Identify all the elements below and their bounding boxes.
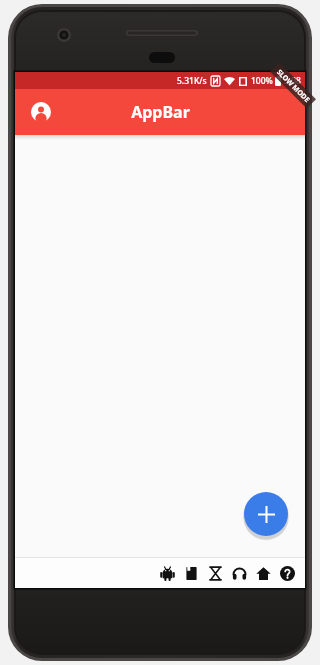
button[interactable]: Timer bbox=[203, 559, 227, 587]
button[interactable]: Book bbox=[179, 559, 203, 587]
staticText: SLOW MODE bbox=[274, 67, 312, 105]
staticText: 5.31K/s bbox=[177, 75, 207, 87]
staticText: AppBar bbox=[131, 101, 190, 123]
button[interactable]: Add bbox=[244, 492, 288, 536]
staticText: 5:08 bbox=[284, 75, 301, 87]
button[interactable]: Help bbox=[275, 559, 299, 587]
button[interactable]: Headphones bbox=[227, 559, 251, 587]
button[interactable]: Android bbox=[155, 559, 179, 587]
button[interactable]: Home bbox=[251, 559, 275, 587]
button[interactable]: Profile bbox=[25, 96, 57, 128]
staticText: 100% bbox=[251, 75, 273, 87]
